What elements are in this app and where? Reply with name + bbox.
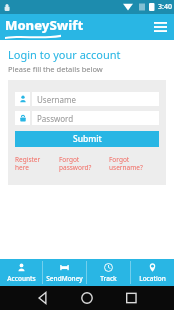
staticText: MoneySwift bbox=[5, 16, 84, 34]
button[interactable]: SendMoney bbox=[43, 259, 86, 286]
button[interactable]: Track bbox=[87, 259, 130, 286]
staticText: Submit bbox=[73, 133, 102, 145]
button[interactable]: Username bbox=[32, 92, 159, 106]
button[interactable]: Accounts bbox=[0, 259, 42, 286]
staticText: Forgot password? bbox=[59, 155, 92, 172]
button[interactable]: Register here bbox=[15, 155, 59, 172]
staticText: Forgot username? bbox=[109, 155, 143, 172]
staticText: Track bbox=[100, 274, 117, 283]
button[interactable]: Forgot password? bbox=[59, 155, 109, 172]
button[interactable]: Submit bbox=[15, 131, 159, 147]
button[interactable]: Password bbox=[32, 111, 159, 125]
staticText: Login to your account bbox=[8, 47, 121, 62]
staticText: Username bbox=[37, 94, 76, 105]
staticText: Accounts bbox=[7, 274, 36, 283]
staticText: Register here bbox=[15, 155, 41, 172]
button[interactable]: Open navigation menu bbox=[152, 19, 168, 35]
staticText: Location bbox=[139, 274, 166, 283]
button[interactable]: Location bbox=[131, 259, 174, 286]
staticText: SendMoney bbox=[46, 274, 83, 283]
staticText: Password bbox=[37, 113, 74, 124]
staticText: Please fill the details below bbox=[8, 64, 103, 74]
staticText: 3:40 bbox=[158, 2, 172, 12]
button[interactable]: Forgot username? bbox=[109, 155, 159, 172]
